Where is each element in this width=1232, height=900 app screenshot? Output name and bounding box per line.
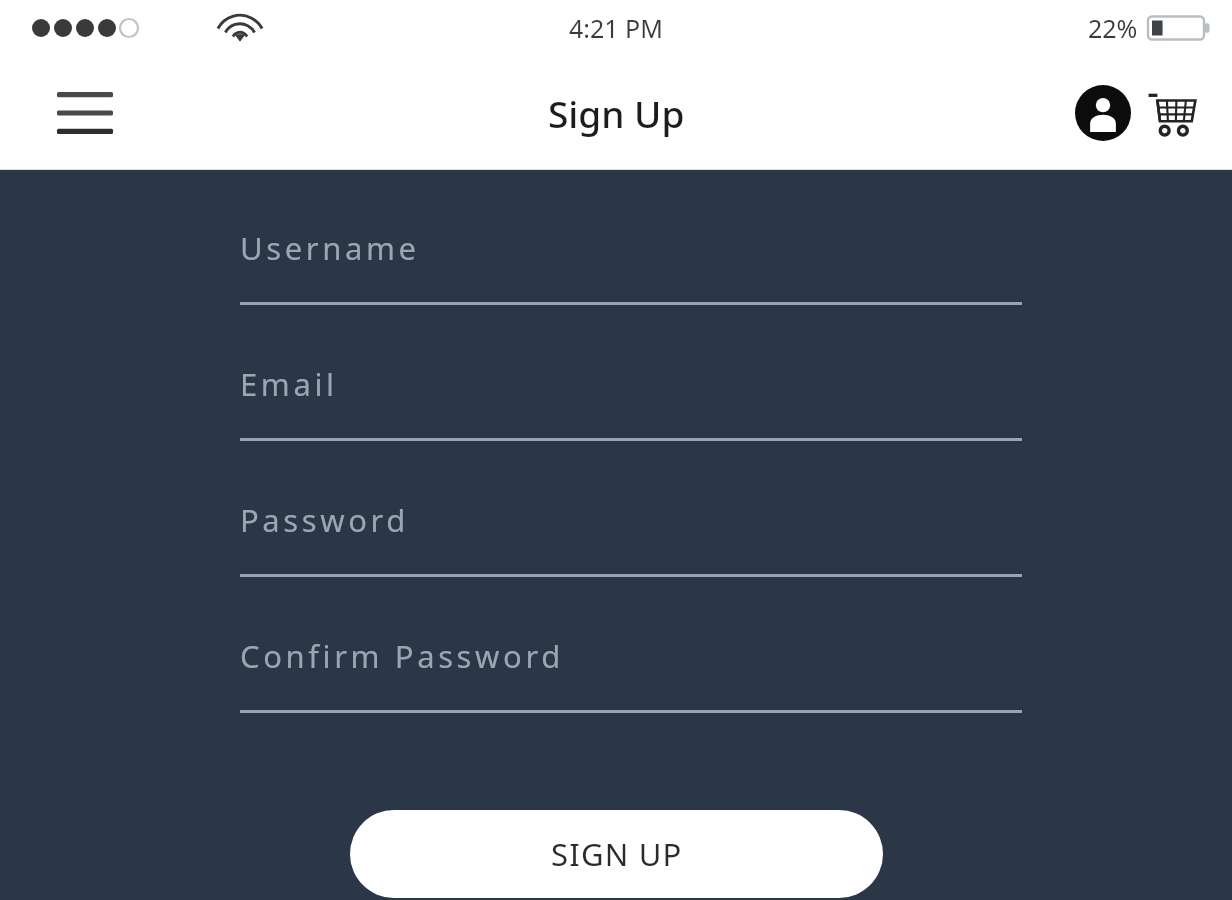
- button[interactable]: Account: [1072, 82, 1134, 144]
- staticText: Password: [240, 499, 410, 541]
- staticText: Username: [240, 227, 420, 269]
- staticText: Confirm Password: [240, 635, 564, 677]
- staticText: 4:21 PM: [569, 11, 663, 45]
- staticText: Sign Up: [548, 88, 685, 138]
- button[interactable]: Email: [240, 363, 1022, 441]
- button[interactable]: Menu: [42, 77, 128, 149]
- button[interactable]: Confirm Password: [240, 635, 1022, 713]
- button[interactable]: SIGN UP: [350, 810, 883, 898]
- staticText: Email: [240, 363, 338, 405]
- button[interactable]: Username: [240, 227, 1022, 305]
- staticText: SIGN UP: [551, 833, 683, 875]
- button[interactable]: Password: [240, 499, 1022, 577]
- button[interactable]: Cart: [1142, 82, 1204, 144]
- staticText: 22%: [1088, 11, 1138, 45]
